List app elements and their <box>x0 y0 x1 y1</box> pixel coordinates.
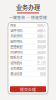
button[interactable]: 提交办理 <box>10 86 46 92</box>
staticText: 套餐类型 <box>10 44 22 49</box>
staticText: 选填 <box>40 71 46 76</box>
staticText: 请输入 <box>37 23 46 27</box>
button[interactable]: 联系方式 <box>8 55 48 60</box>
button[interactable]: 证件照片 <box>8 60 48 66</box>
staticText: 提交办理 <box>20 86 36 92</box>
staticText: 业务类型 <box>10 66 22 71</box>
staticText: 备注信息 <box>10 71 22 76</box>
button[interactable]: 办理时间 <box>8 50 48 55</box>
staticText: 服务地址 <box>10 39 22 44</box>
staticText: 请选择 <box>37 66 46 71</box>
staticText: 请输入 <box>37 33 46 38</box>
button[interactable]: 服务地址 <box>8 39 48 44</box>
button[interactable]: 姓名 <box>8 23 48 28</box>
button[interactable]: 手机号码 <box>8 33 48 39</box>
staticText: 请选择 <box>37 39 46 44</box>
staticText: 证件照片 <box>10 60 22 65</box>
staticText: 办理时间 <box>10 50 22 54</box>
staticText: 去上传 <box>37 60 46 65</box>
staticText: 一键查询 · 快速受理 <box>9 15 47 20</box>
button[interactable]: 备注信息 <box>8 71 48 77</box>
button[interactable]: 套餐类型 <box>8 44 48 50</box>
button[interactable]: 证件号码 <box>8 28 48 33</box>
staticText: 请输入 <box>37 55 46 60</box>
staticText: 业务办理 <box>16 2 40 11</box>
staticText: 手机号码 <box>10 33 22 38</box>
staticText: 联系方式 <box>10 55 22 60</box>
staticText: 请选择 <box>37 44 46 49</box>
staticText: 请输入 <box>37 28 46 33</box>
staticText: 请选择 <box>37 50 46 54</box>
staticText: 证件号码 <box>10 28 22 33</box>
staticText: 姓名 <box>10 23 16 27</box>
button[interactable]: 业务类型 <box>8 66 48 71</box>
